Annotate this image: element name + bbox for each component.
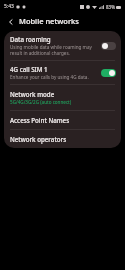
staticText: Enhance your calls by using 4G data. — [10, 74, 89, 80]
button[interactable]: Network operators — [4, 130, 121, 148]
button[interactable]: Access Point Names — [4, 111, 121, 129]
button[interactable]: Network mode — [4, 85, 121, 110]
staticText: 5G/4G/3G/2G (auto connect) — [10, 99, 72, 105]
staticText: 4G call SIM 1 — [10, 65, 48, 73]
staticText: Using mobile data while roaming may resu… — [10, 44, 96, 56]
button[interactable]: Data roaming — [4, 31, 121, 60]
staticText: Data roaming — [10, 35, 51, 43]
staticText: 83% — [106, 4, 115, 10]
button[interactable]: Off — [100, 41, 116, 50]
button[interactable]: On — [100, 68, 116, 77]
button[interactable]: Back — [5, 16, 16, 27]
button[interactable]: 4G call SIM 1 — [4, 61, 121, 84]
staticText: 5:43 — [4, 3, 14, 10]
staticText: Mobile networks — [19, 16, 79, 26]
staticText: Network mode — [10, 90, 55, 98]
staticText: Network operators — [10, 135, 67, 143]
staticText: Access Point Names — [10, 116, 70, 124]
